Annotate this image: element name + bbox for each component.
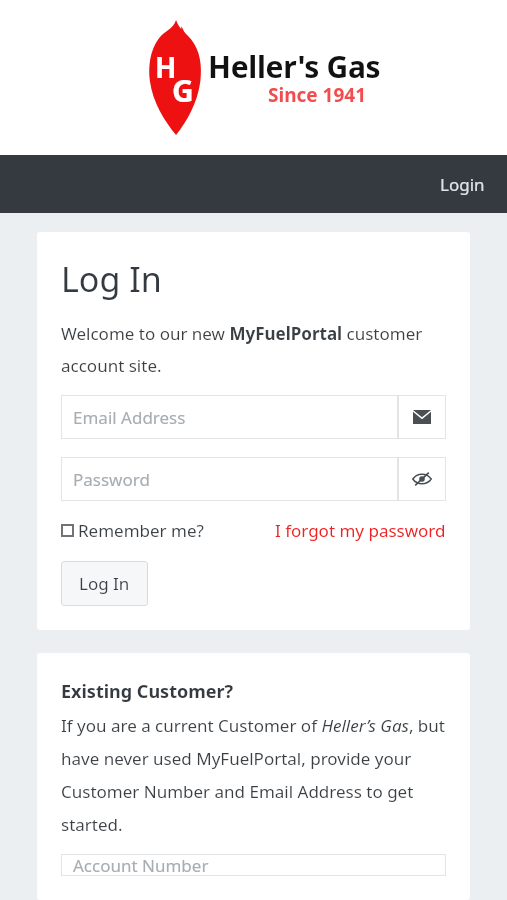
staticText: G: [172, 70, 194, 111]
staticText: Since 1941: [268, 82, 367, 108]
button[interactable]: Show password: [398, 457, 446, 501]
staticText: Log In: [79, 572, 130, 595]
button[interactable]: Email: [398, 395, 446, 439]
staticText: If you are a current Customer of Heller’…: [61, 714, 446, 836]
staticText: Account Number: [73, 854, 209, 876]
button[interactable]: Password: [61, 457, 446, 501]
button[interactable]: Remember me?: [61, 519, 204, 542]
button[interactable]: Log In: [61, 561, 148, 606]
staticText: Email Address: [73, 406, 186, 429]
staticText: Log In: [61, 256, 162, 302]
staticText: H: [155, 48, 177, 86]
staticText: Login: [440, 173, 485, 196]
staticText: I forgot my password: [275, 519, 446, 542]
button[interactable]: Login: [418, 159, 507, 210]
button[interactable]: Email Address: [61, 395, 446, 439]
staticText: Welcome to our new MyFuelPortal customer…: [61, 322, 446, 377]
staticText: Existing Customer?: [61, 679, 234, 704]
button[interactable]: I forgot my password: [275, 519, 446, 542]
button[interactable]: Account Number: [61, 854, 446, 876]
staticText: Remember me?: [78, 519, 204, 542]
staticText: Heller's Gas: [208, 46, 381, 87]
staticText: Password: [73, 468, 150, 491]
